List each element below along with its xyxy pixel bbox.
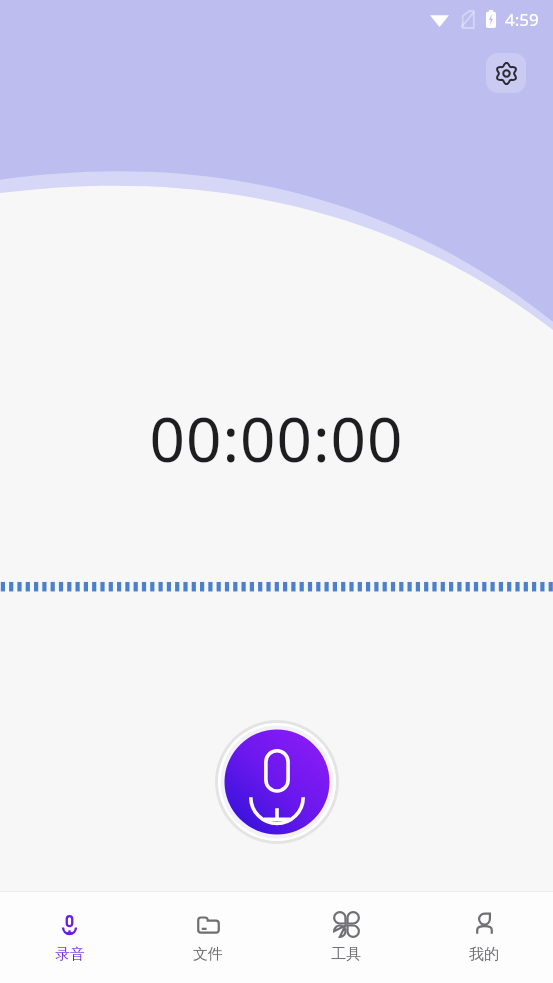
staticText: 我的 bbox=[469, 945, 499, 964]
button[interactable]: 录音 bbox=[0, 892, 139, 983]
button[interactable]: Start recording bbox=[215, 720, 339, 844]
button[interactable]: 我的 bbox=[415, 892, 553, 983]
staticText: 文件 bbox=[193, 945, 223, 964]
staticText: 00:00:00 bbox=[149, 396, 404, 480]
staticText: 录音 bbox=[55, 945, 85, 964]
button[interactable]: 文件 bbox=[139, 892, 277, 983]
staticText: 4:59 bbox=[505, 8, 539, 31]
button[interactable]: 工具 bbox=[277, 892, 415, 983]
button[interactable]: Settings bbox=[486, 53, 526, 93]
staticText: 工具 bbox=[331, 945, 361, 964]
